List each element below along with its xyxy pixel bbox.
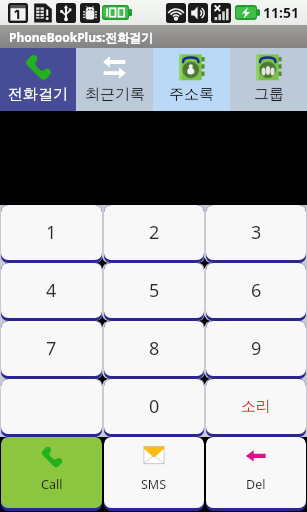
button[interactable]: 9 xyxy=(206,321,306,376)
button[interactable]: 4 xyxy=(1,263,102,318)
staticText: 주소록 xyxy=(169,85,214,104)
button[interactable]: 0 xyxy=(104,379,204,434)
other: Call xyxy=(40,445,64,469)
button[interactable]: 3 xyxy=(206,205,306,260)
staticText: 4 xyxy=(46,278,57,303)
staticText: 1 xyxy=(46,220,57,245)
button[interactable]: 소리 xyxy=(206,379,306,434)
staticText: 전화걸기 xyxy=(8,85,68,104)
other: Delete xyxy=(244,445,268,469)
staticText: 8 xyxy=(149,336,160,361)
staticText: Call xyxy=(41,476,63,493)
button[interactable]: 최근기록 xyxy=(76,48,153,111)
staticText: 2 xyxy=(149,220,160,245)
button[interactable]: Delete xyxy=(206,437,306,508)
staticText: PhoneBookPlus:전화걸기 xyxy=(9,29,154,45)
staticText: 11:51 xyxy=(263,3,299,22)
button[interactable]: 주소록 xyxy=(153,48,230,111)
button[interactable]: 6 xyxy=(206,263,306,318)
staticText: 최근기록 xyxy=(85,85,145,104)
staticText: 소리 xyxy=(241,397,271,416)
staticText: Del xyxy=(246,476,266,493)
staticText: SMS xyxy=(141,476,167,493)
staticText: 5 xyxy=(149,278,160,303)
button[interactable]: 5 xyxy=(104,263,204,318)
button[interactable] xyxy=(1,379,102,434)
button[interactable]: 전화걸기 xyxy=(0,48,76,111)
staticText: 그룹 xyxy=(254,85,284,104)
staticText: 3 xyxy=(251,220,262,245)
button[interactable]: 2 xyxy=(104,205,204,260)
button[interactable]: 그룹 xyxy=(230,48,307,111)
staticText: 7 xyxy=(46,336,57,361)
button[interactable]: SMS xyxy=(104,437,204,508)
staticText: 9 xyxy=(251,336,262,361)
button[interactable]: Call xyxy=(1,437,102,508)
staticText: 0 xyxy=(149,394,160,419)
other: SMS xyxy=(142,445,166,469)
button[interactable]: 1 xyxy=(1,205,102,260)
button[interactable]: 7 xyxy=(1,321,102,376)
button[interactable]: 8 xyxy=(104,321,204,376)
staticText: 6 xyxy=(251,278,262,303)
